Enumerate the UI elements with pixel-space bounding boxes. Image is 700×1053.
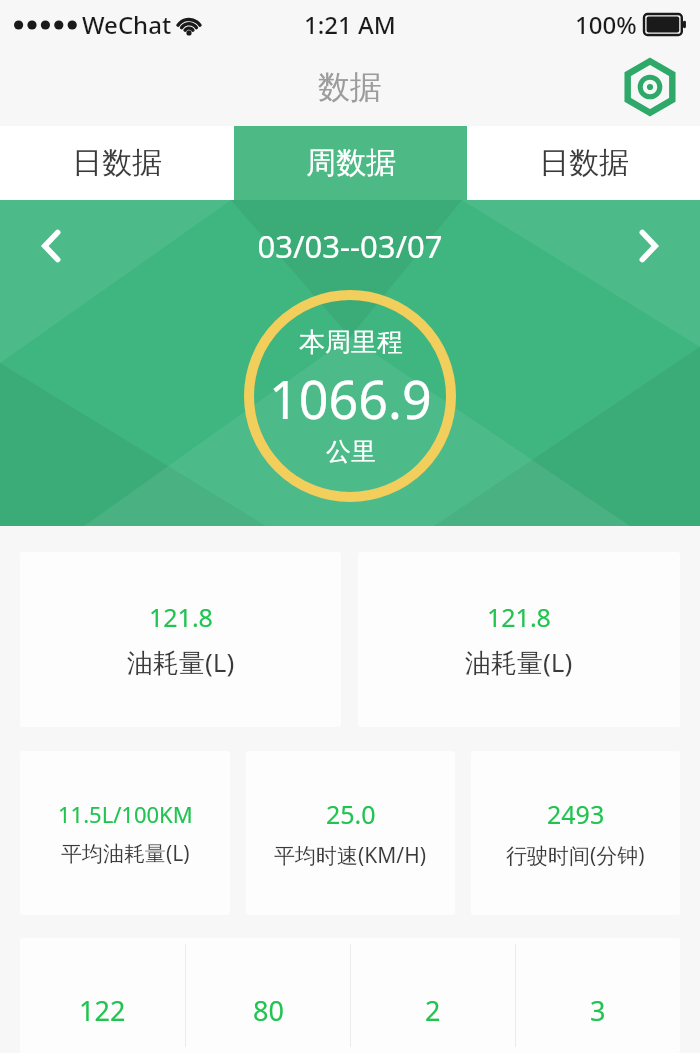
staticText: 1:21 AM <box>304 8 396 41</box>
button[interactable]: 11.5L/100KM <box>20 751 230 915</box>
button[interactable]: 2493 <box>471 751 680 915</box>
staticText: 2493 <box>547 797 605 831</box>
button[interactable]: 3 <box>516 938 680 1053</box>
staticText: 平均时速(KM/H) <box>274 841 427 870</box>
staticText: 油耗量(L) <box>465 644 573 680</box>
staticText: 03/03--03/07 <box>78 225 622 267</box>
staticText: 油耗量(L) <box>127 644 235 680</box>
staticText: 行驶时间(分钟) <box>506 841 645 870</box>
button[interactable]: 日数据 <box>467 126 700 200</box>
button[interactable]: 122 <box>20 938 185 1053</box>
button[interactable]: 121.8 <box>358 552 680 727</box>
staticText: WeChat <box>82 8 172 41</box>
staticText: 日数据 <box>72 144 162 182</box>
staticText: 数据 <box>318 67 382 107</box>
button[interactable]: Settings <box>622 59 678 115</box>
staticText: 公里 <box>326 436 376 467</box>
button[interactable]: 周数据 <box>234 126 467 200</box>
staticText: 周数据 <box>306 144 396 182</box>
staticText: 122 <box>79 992 126 1029</box>
button[interactable]: 80 <box>186 938 350 1053</box>
staticText: 80 <box>253 992 284 1029</box>
staticText: 11.5L/100KM <box>58 799 193 829</box>
staticText: 121.8 <box>487 600 551 634</box>
staticText: 121.8 <box>149 600 213 634</box>
button[interactable]: 25.0 <box>246 751 455 915</box>
button[interactable]: Next week <box>622 220 674 272</box>
button[interactable]: 2 <box>351 938 515 1053</box>
button[interactable]: Previous week <box>26 220 78 272</box>
staticText: 3 <box>590 992 606 1029</box>
button[interactable]: 日数据 <box>0 126 234 200</box>
staticText: 本周里程 <box>299 326 403 359</box>
staticText: 日数据 <box>539 144 629 182</box>
staticText: 25.0 <box>326 797 376 831</box>
staticText: 1066.9 <box>269 363 432 434</box>
staticText: 平均油耗量(L) <box>61 839 190 868</box>
staticText: 2 <box>425 992 441 1029</box>
staticText: 100% <box>575 8 637 41</box>
button[interactable]: 121.8 <box>20 552 341 727</box>
